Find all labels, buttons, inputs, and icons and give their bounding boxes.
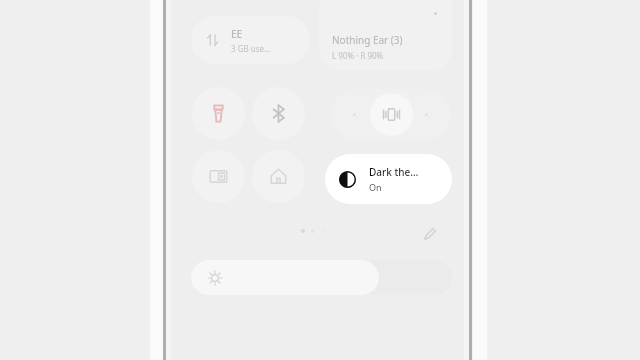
button[interactable]: Sound mode — [331, 89, 451, 140]
staticText: Dark the… — [369, 165, 419, 179]
staticText: Nothing Ear (3) — [332, 33, 403, 47]
button[interactable]: Screen record — [192, 150, 245, 203]
staticText: 3 GB use… — [231, 43, 271, 54]
button[interactable]: Flashlight — [192, 87, 245, 140]
button[interactable]: Dark the… — [325, 154, 452, 204]
button[interactable]: Bluetooth — [252, 87, 305, 140]
button[interactable]: Nothing Ear (3) — [319, 0, 452, 70]
button[interactable]: Edit — [416, 221, 442, 247]
button[interactable]: Brightness — [191, 260, 452, 295]
button[interactable]: Home — [252, 150, 305, 203]
button[interactable]: EE — [191, 16, 310, 64]
staticText: EE — [231, 27, 243, 41]
staticText: On — [369, 181, 382, 193]
staticText: L 90% · R 90% — [332, 50, 384, 61]
